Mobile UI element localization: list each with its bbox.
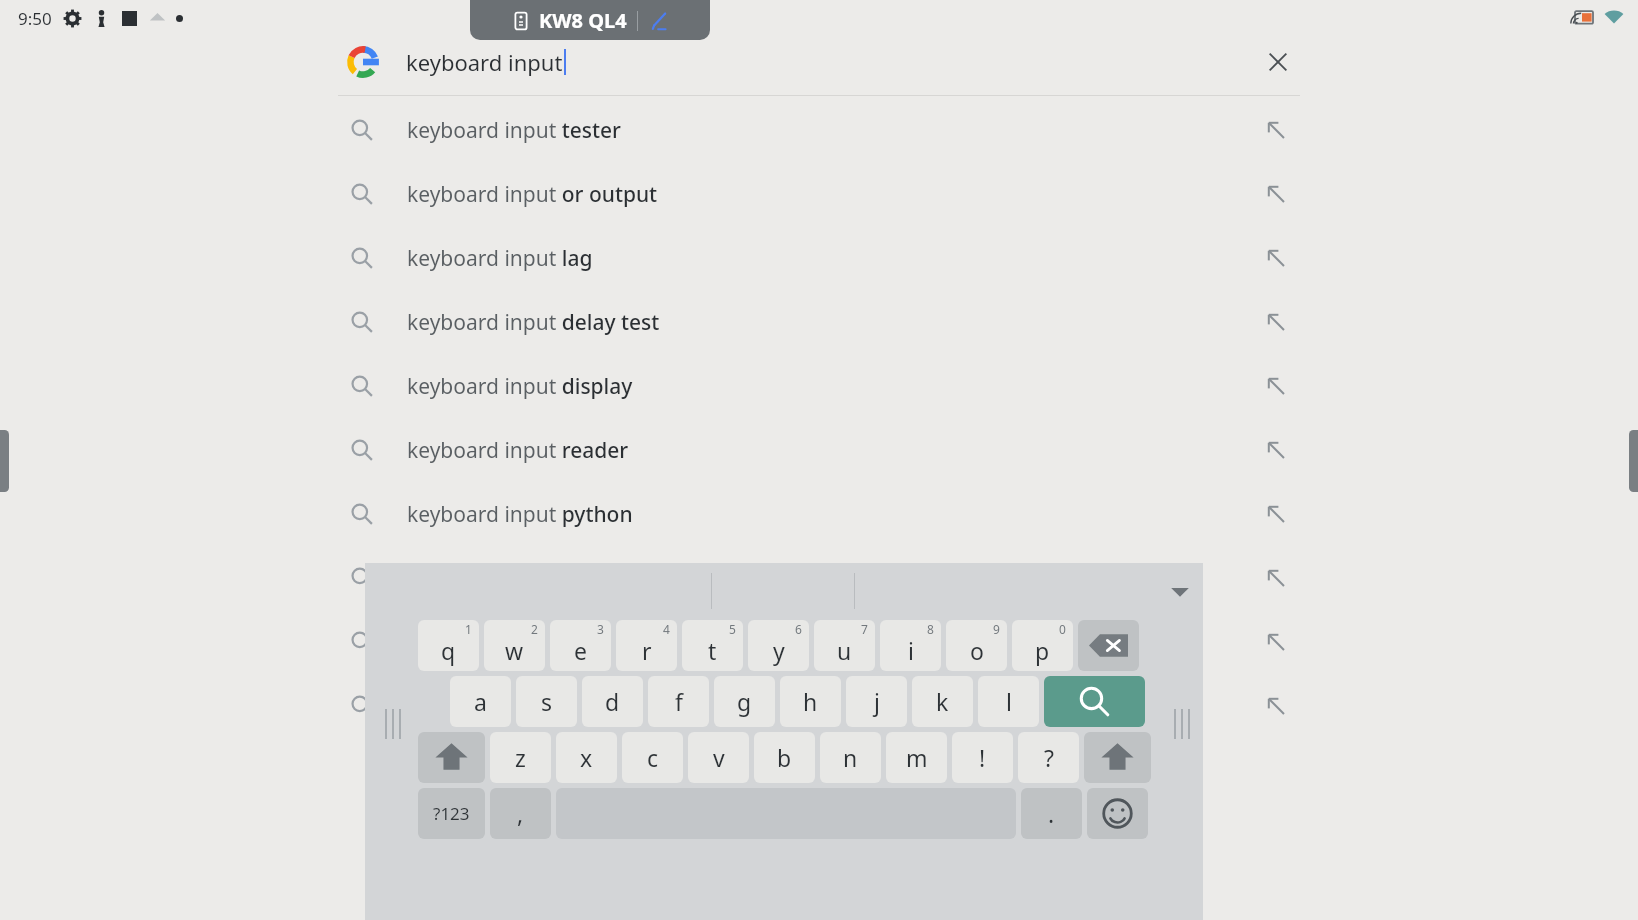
button[interactable]: 2 (484, 620, 545, 671)
button[interactable]: Shift (1084, 732, 1151, 783)
staticText: o (970, 635, 984, 666)
button[interactable]: Emoji (1087, 788, 1148, 839)
button[interactable]: v (688, 732, 749, 783)
button[interactable]: keyboard input or output (338, 162, 1300, 226)
button[interactable]: h (780, 676, 841, 727)
staticText: r (642, 635, 652, 666)
button[interactable]: Insert suggestion (1252, 490, 1300, 538)
staticText: ?123 (433, 802, 470, 825)
button[interactable]: Insert suggestion (1252, 618, 1300, 666)
button[interactable]: 8 (880, 620, 941, 671)
staticText: keyboard input python (407, 500, 633, 529)
button[interactable]: Insert suggestion (1252, 106, 1300, 154)
button[interactable]: keyboard input python (338, 482, 1300, 546)
button[interactable]: c (622, 732, 683, 783)
button[interactable]: Insert suggestion (1252, 682, 1300, 730)
button[interactable]: z (490, 732, 551, 783)
button[interactable]: keyboard input device (338, 610, 1300, 674)
staticText: ! (979, 742, 986, 773)
staticText: keyboard input reader (407, 436, 629, 465)
staticText: l (1006, 686, 1012, 717)
button[interactable]: 1 (418, 620, 479, 671)
button[interactable]: j (846, 676, 907, 727)
button[interactable]: Insert suggestion (1252, 426, 1300, 474)
button[interactable]: keyboard input lag (338, 226, 1300, 290)
button[interactable]: Insert suggestion (1252, 298, 1300, 346)
staticText: f (675, 686, 683, 717)
button[interactable]: 5 (682, 620, 743, 671)
button[interactable]: keyboard input tester (338, 98, 1300, 162)
staticText: keyboard input delay test (407, 308, 660, 337)
staticText: x (580, 742, 593, 773)
button[interactable]: keyboard input api (338, 674, 1300, 738)
button[interactable]: l (978, 676, 1039, 727)
staticText: w (505, 635, 524, 666)
staticText: k (936, 686, 949, 717)
button[interactable]: 0 (1012, 620, 1073, 671)
button[interactable]: 9 (946, 620, 1007, 671)
staticText: v (713, 742, 725, 773)
staticText: c (647, 742, 659, 773)
staticText: p (1035, 635, 1050, 666)
button[interactable]: Search (1044, 676, 1145, 727)
staticText: q (441, 635, 456, 666)
button[interactable]: g (714, 676, 775, 727)
button[interactable]: KW8 QL4 (470, 0, 710, 40)
button[interactable]: Insert suggestion (1252, 554, 1300, 602)
staticText: ? (1044, 742, 1054, 773)
staticText: keyboard input device (407, 628, 626, 657)
staticText: n (843, 742, 858, 773)
staticText: keyboard input display (407, 372, 633, 401)
button[interactable]: Insert suggestion (1252, 234, 1300, 282)
button[interactable]: ?123 (418, 788, 485, 839)
button[interactable]: keyboard input display (338, 354, 1300, 418)
staticText: a (474, 686, 487, 717)
staticText: , (517, 798, 524, 829)
button[interactable]: s (516, 676, 577, 727)
button[interactable]: m (886, 732, 947, 783)
staticText: i (908, 635, 914, 666)
staticText: 1 (465, 621, 472, 637)
button[interactable]: 3 (550, 620, 611, 671)
staticText: keyboard input (406, 47, 563, 77)
button[interactable]: Clear search (1256, 40, 1300, 84)
button[interactable]: a (450, 676, 511, 727)
button[interactable]: 7 (814, 620, 875, 671)
button[interactable]: k (912, 676, 973, 727)
button[interactable]: Insert suggestion (1252, 170, 1300, 218)
button[interactable]: Back (0, 430, 9, 492)
staticText: s (541, 686, 553, 717)
button[interactable]: Shift (418, 732, 485, 783)
staticText: u (837, 635, 852, 666)
button[interactable]: n (820, 732, 881, 783)
button[interactable]: Backspace (1078, 620, 1139, 671)
staticText: 9:50 (18, 7, 52, 30)
staticText: 3 (597, 621, 604, 637)
button[interactable]: keyboard input delay test (338, 290, 1300, 354)
button[interactable]: x (556, 732, 617, 783)
button[interactable]: Insert suggestion (1252, 362, 1300, 410)
staticText: 5 (729, 621, 736, 637)
staticText: keyboard input or output (407, 180, 658, 209)
button[interactable]: keyboard input test (338, 546, 1300, 610)
button[interactable]: ? (1018, 732, 1079, 783)
staticText: keyboard input tester (407, 116, 621, 145)
staticText: 8 (927, 621, 934, 637)
button[interactable]: d (582, 676, 643, 727)
button[interactable]: Forward (1629, 430, 1638, 492)
staticText: g (737, 686, 752, 717)
button[interactable]: f (648, 676, 709, 727)
staticText: KW8 QL4 (539, 7, 627, 34)
button[interactable]: ! (952, 732, 1013, 783)
button[interactable]: . (1021, 788, 1082, 839)
button[interactable]: 6 (748, 620, 809, 671)
button[interactable]: keyboard input reader (338, 418, 1300, 482)
staticText: d (605, 686, 620, 717)
staticText: m (906, 742, 928, 773)
button[interactable]: 4 (616, 620, 677, 671)
button[interactable]: b (754, 732, 815, 783)
button[interactable]: Hide keyboard (1163, 575, 1197, 609)
button[interactable]: , (490, 788, 551, 839)
